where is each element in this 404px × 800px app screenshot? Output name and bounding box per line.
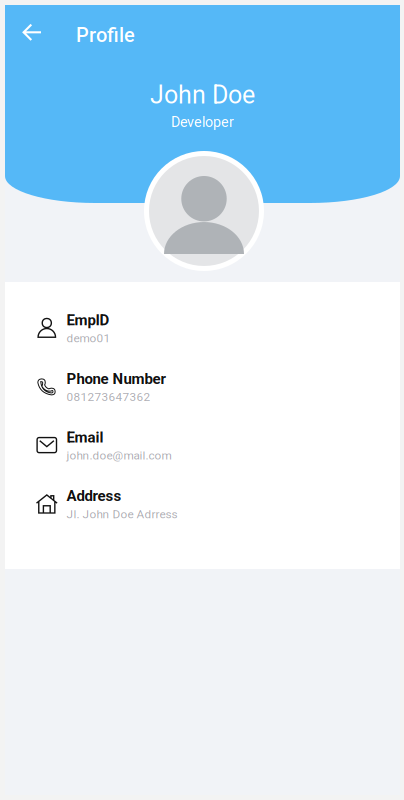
button[interactable]: Address [5, 487, 400, 546]
staticText: Address [66, 487, 121, 505]
staticText: Email [66, 429, 103, 446]
staticText: demo01 [66, 331, 110, 345]
staticText: john.doe@mail.com [66, 449, 171, 462]
staticText: John Doe [150, 80, 255, 110]
staticText: 081273647362 [66, 390, 150, 404]
button[interactable]: EmpID [5, 311, 400, 370]
staticText: Developer [171, 114, 234, 130]
staticText: Profile [76, 23, 135, 47]
staticText: EmpID [66, 311, 109, 329]
staticText: Jl. John Doe Adrress [66, 507, 177, 521]
button[interactable]: Back [5, 10, 55, 55]
button[interactable]: Phone Number [5, 370, 400, 429]
button[interactable]: Email [5, 429, 400, 487]
staticText: Phone Number [66, 370, 165, 388]
